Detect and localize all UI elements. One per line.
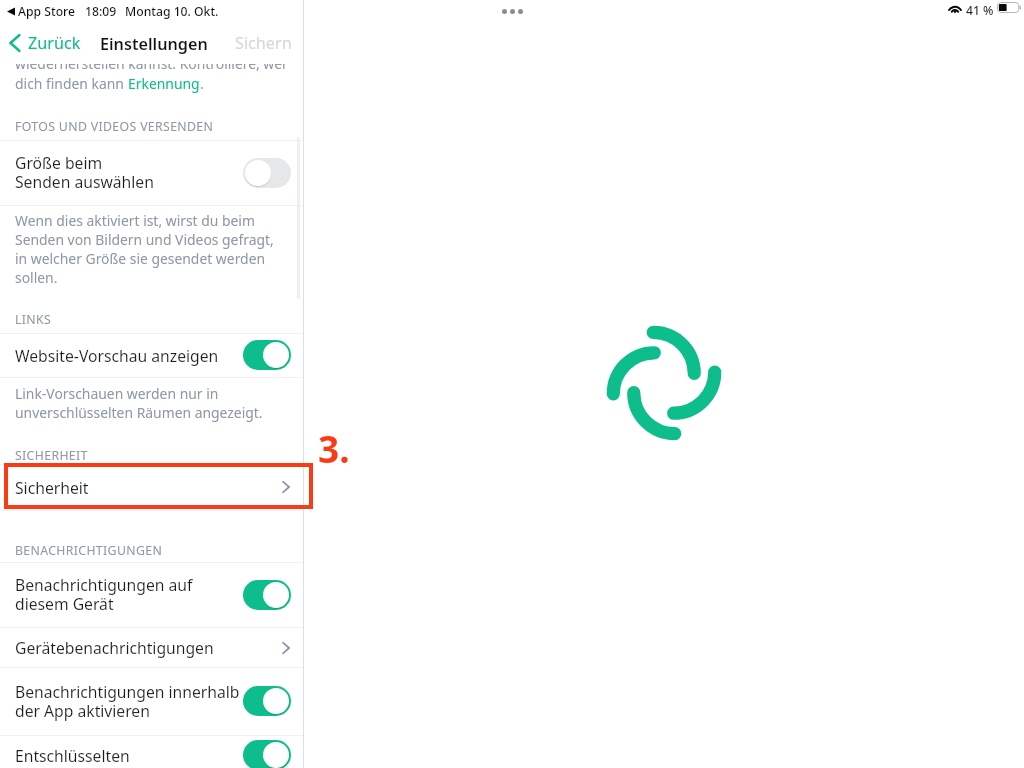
staticText: Gerätebenachrichtigungen (15, 637, 282, 658)
button[interactable]: Benachrichtigungen innerhalb der App akt… (0, 667, 303, 735)
staticText: 41 % (966, 2, 994, 19)
button[interactable]: Sicherheit (0, 464, 303, 510)
button[interactable]: Multitasking-Optionen (498, 5, 527, 18)
button[interactable]: Entschlüsselten (0, 735, 303, 768)
button[interactable]: Sichern (231, 32, 296, 54)
staticText: Zurück (28, 32, 81, 54)
staticText: Größe beim Senden auswählen (15, 152, 243, 193)
button[interactable]: Website-Vorschau anzeigen (0, 333, 303, 377)
staticText: Benachrichtigungen auf diesem Gerät (15, 574, 243, 615)
button[interactable]: Erkennung (128, 74, 200, 93)
button[interactable]: Benachrichtigungen auf diesem Gerät (0, 562, 303, 627)
staticText: Sicherheit (15, 477, 282, 498)
button[interactable]: Zurück (0, 30, 85, 56)
staticText: 18:09 (85, 3, 117, 20)
staticText: Einstellungen (100, 33, 208, 55)
staticText: BENACHRICHTIGUNGEN (15, 542, 163, 559)
button[interactable]: Gerätebenachrichtigungen (0, 628, 303, 667)
staticText: App Store (18, 3, 75, 20)
staticText: Sichern (235, 32, 292, 54)
staticText: Montag 10. Okt. (125, 3, 219, 20)
staticText: Benachrichtigungen innerhalb der App akt… (15, 681, 243, 722)
staticText: LINKS (15, 311, 52, 328)
staticText: . (200, 74, 204, 93)
staticText: 3. (318, 423, 350, 473)
button[interactable]: Größe beim Senden auswählen (0, 140, 303, 205)
staticText: FOTOS UND VIDEOS VERSENDEN (15, 118, 214, 135)
staticText: Link-Vorschauen werden nur in unverschlü… (15, 384, 263, 422)
staticText: SICHERHEIT (15, 447, 88, 464)
staticText: dich finden kann (15, 74, 128, 93)
staticText: Website-Vorschau anzeigen (15, 345, 243, 366)
staticText: wiederherstellen kannst. Kontrolliere, w… (15, 64, 303, 72)
staticText: Entschlüsselten (15, 745, 243, 766)
staticText: Wenn dies aktiviert ist, wirst du beim S… (15, 211, 274, 287)
